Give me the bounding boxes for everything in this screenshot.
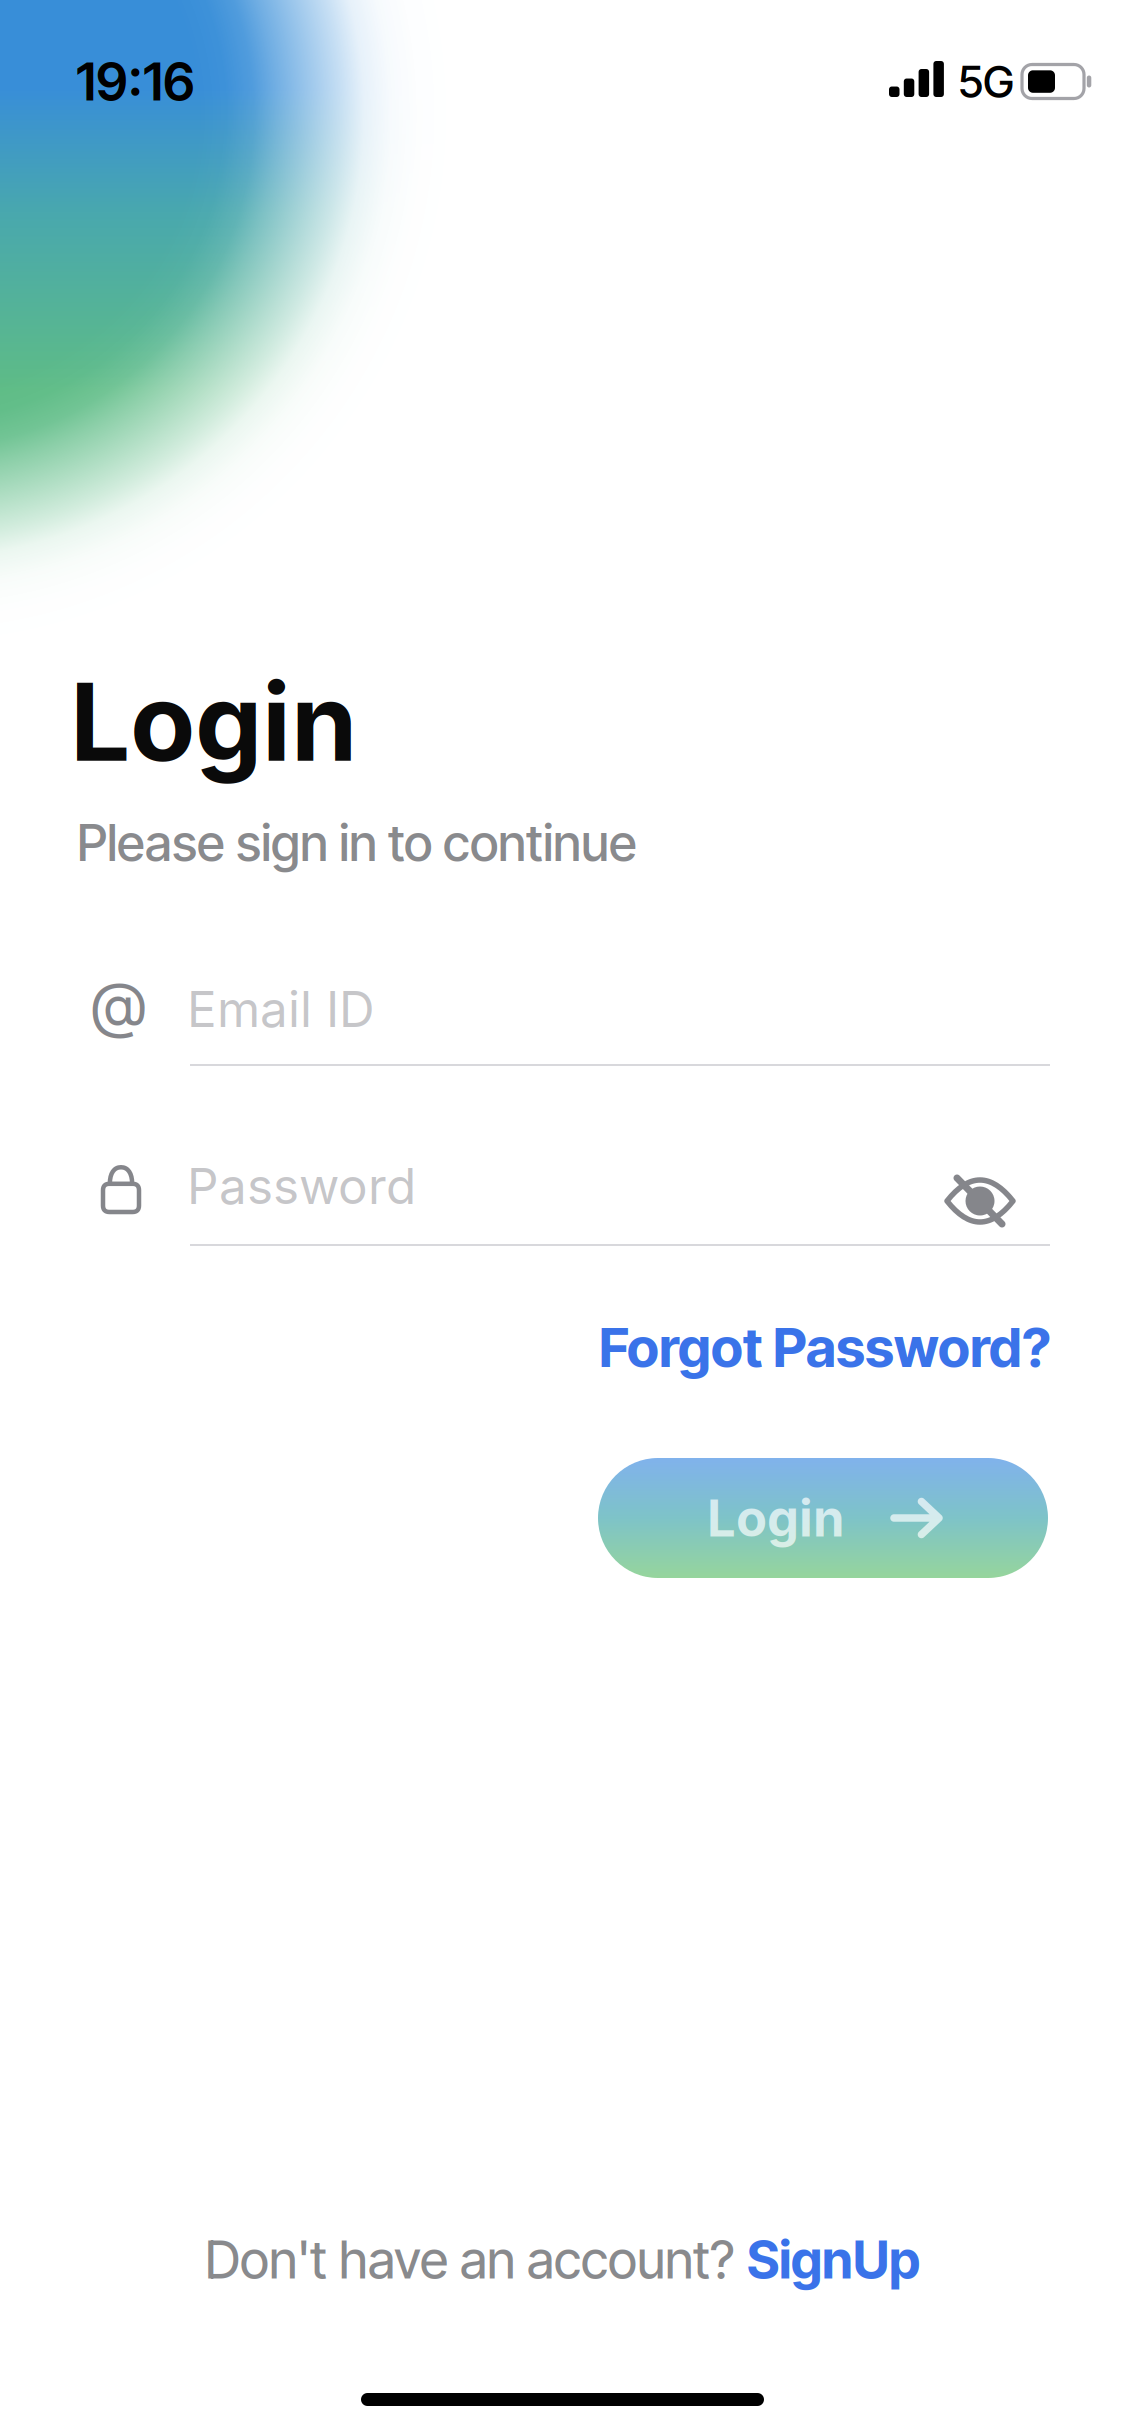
button[interactable]: Forgot Password? bbox=[599, 1314, 1051, 1380]
button[interactable]: Login bbox=[598, 1458, 1048, 1578]
staticText: 5G bbox=[958, 55, 1014, 108]
staticText: Forgot Password? bbox=[599, 1314, 1051, 1380]
staticText: @ bbox=[89, 968, 148, 1040]
staticText: Password bbox=[187, 1157, 416, 1215]
staticText: 19:16 bbox=[76, 50, 195, 113]
staticText: SignUp bbox=[747, 2228, 920, 2291]
staticText: Login bbox=[707, 1488, 845, 1548]
button[interactable]: SignUp bbox=[747, 2228, 920, 2291]
staticText: Please sign in to continue bbox=[77, 812, 637, 873]
staticText: Login bbox=[70, 659, 357, 785]
staticText: Email ID bbox=[187, 980, 375, 1038]
button[interactable]: Show password bbox=[945, 1171, 1015, 1231]
staticText: Don't have an account? bbox=[205, 2228, 735, 2291]
